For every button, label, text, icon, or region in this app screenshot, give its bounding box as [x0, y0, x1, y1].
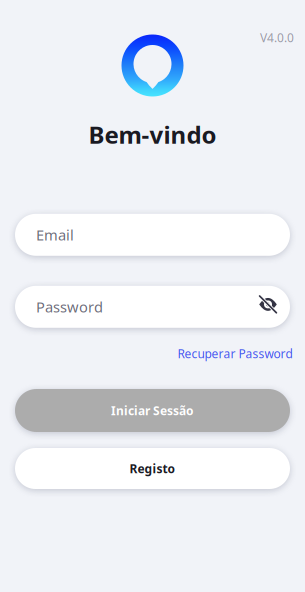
button[interactable]: Password: [15, 286, 290, 328]
button[interactable]: Email: [15, 214, 290, 256]
button[interactable]: Show password: [257, 296, 279, 318]
button[interactable]: Registo: [15, 448, 290, 489]
staticText: Registo: [129, 460, 175, 476]
button[interactable]: Iniciar Sessão: [15, 389, 290, 432]
staticText: Recuperar Password: [177, 345, 292, 361]
staticText: V4.0.0: [260, 29, 294, 45]
staticText: Bem-vindo: [88, 119, 216, 150]
staticText: Password: [36, 297, 103, 317]
button[interactable]: Recuperar Password: [177, 345, 292, 361]
staticText: Iniciar Sessão: [111, 402, 194, 418]
staticText: Email: [36, 225, 74, 245]
